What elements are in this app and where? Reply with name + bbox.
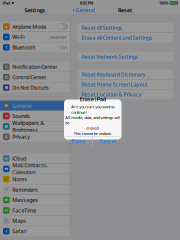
staticText: General [12,102,31,109]
button[interactable]: FaceTime [0,205,70,215]
button[interactable]: Control Center [0,72,70,82]
staticText: iPad [2,0,10,6]
staticText: Safari [12,228,26,235]
button[interactable]: Wi-Fi [0,32,70,42]
staticText: Settings [24,7,45,14]
staticText: warner [50,33,67,41]
staticText: All media, data, and settings will be [65,115,120,125]
staticText: Cancel [99,138,115,145]
button[interactable]: General [0,101,70,111]
staticText: 100% [159,0,169,6]
staticText: iCloud [12,155,26,162]
staticText: Control Center [12,74,46,81]
staticText: Erase iPad [80,96,106,103]
staticText: Notification Center [12,63,57,70]
button[interactable]: Reset Network Settings [77,52,173,61]
staticText: Privacy [12,133,30,140]
staticText: erased. [86,125,99,131]
button[interactable]: Reset Keyboard Dictionary [77,70,173,79]
button[interactable]: Notes [0,174,70,184]
staticText: Airplane Mode [12,23,46,30]
button[interactable]: Messages [0,195,70,205]
staticText: Maps [12,217,26,224]
staticText: Sounds [12,112,30,120]
staticText: Messages [12,196,38,204]
staticText: Erase All Content and Settings [82,34,153,41]
button[interactable]: Bluetooth [0,42,70,52]
staticText: General [75,7,94,14]
button[interactable]: Reset All Settings [77,23,173,33]
staticText: Reset All Settings [82,24,123,31]
staticText: Are you sure you want to continue? [71,104,114,115]
staticText: Bluetooth [12,44,35,51]
button[interactable]: Maps [0,216,70,226]
button[interactable]: General [70,6,110,15]
staticText: Do Not Disturb [12,84,48,91]
staticText: Reset Keyboard Dictionary [82,71,146,78]
staticText: FaceTime [12,207,36,214]
button[interactable]: Sounds [0,111,70,121]
button[interactable]: Erase [64,136,92,146]
button[interactable]: Reset Location & Privacy [77,90,173,99]
staticText: Notes [12,176,27,183]
button[interactable]: Reset Home Screen Layout [77,80,173,89]
staticText: Reset [118,7,132,14]
button[interactable]: Notification Center [0,62,70,72]
staticText: Wallpapers & Brightness [12,119,44,133]
staticText: Erase [71,138,85,145]
staticText: 8:02 PM [80,0,94,6]
button[interactable]: Reminders [0,185,70,195]
staticText: Reset Network Settings [82,53,139,60]
button[interactable]: Erase All Content and Settings [77,33,173,43]
button[interactable]: Cancel [93,136,121,146]
button[interactable]: Privacy [0,132,70,142]
staticText: Reset Location & Privacy [82,91,142,98]
button[interactable]: Wallpapers & Brightness [0,121,70,131]
button[interactable]: iCloud [0,153,70,163]
button[interactable]: Airplane Mode [0,22,70,32]
staticText: On [60,44,67,51]
staticText: This cannot be undone. [74,131,112,136]
staticText: Reminders [12,186,38,193]
staticText: Wi-Fi [12,33,24,41]
staticText: Mail, Contacts, Calendars [12,162,47,176]
button[interactable]: Safari [0,226,70,236]
button[interactable]: Mail, Contacts, Calendars [0,164,70,174]
staticText: Reset Home Screen Layout [82,81,148,88]
button[interactable]: Do Not Disturb [0,83,70,93]
